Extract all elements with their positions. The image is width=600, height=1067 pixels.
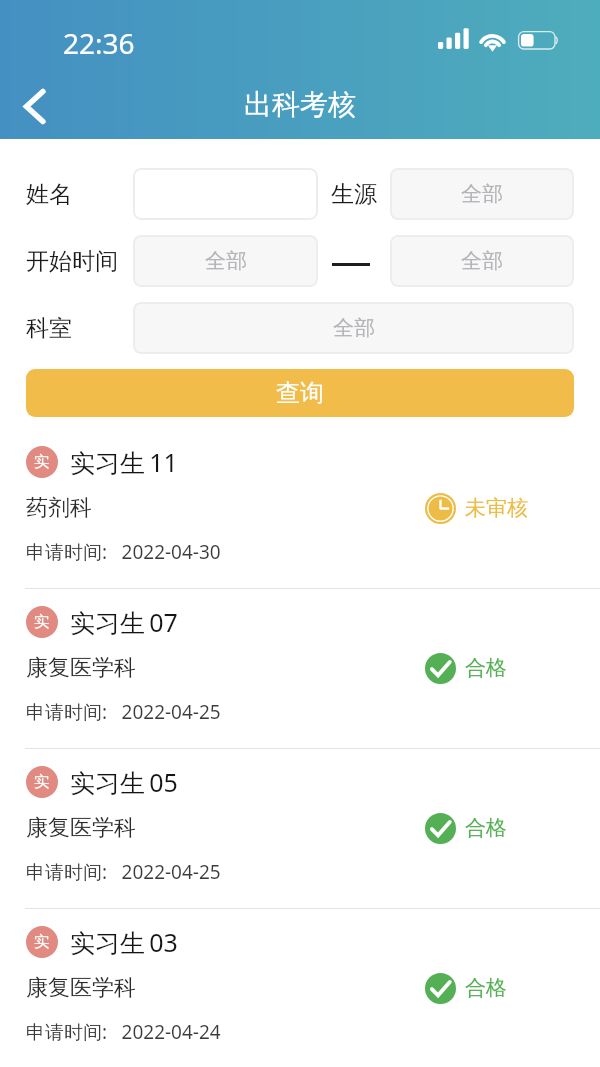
- staticText: 出科考核: [244, 87, 356, 122]
- staticText: 申请时间: 2022-04-24: [26, 1019, 221, 1045]
- staticText: 实: [34, 612, 50, 632]
- button[interactable]: 实: [0, 431, 600, 591]
- button[interactable]: 实: [0, 911, 600, 1067]
- staticText: 实: [34, 932, 50, 952]
- staticText: 开始时间: [26, 247, 118, 276]
- button[interactable]: [133, 168, 318, 220]
- staticText: 申请时间: 2022-04-25: [26, 859, 221, 885]
- staticText: 未审核: [465, 495, 528, 521]
- staticText: 申请时间: 2022-04-25: [26, 699, 221, 725]
- staticText: 申请时间: 2022-04-30: [26, 539, 221, 565]
- staticText: 实: [34, 772, 50, 792]
- staticText: 科室: [26, 314, 72, 343]
- staticText: 实习生 07: [70, 605, 178, 637]
- staticText: 康复医学科: [26, 654, 136, 682]
- button[interactable]: 全部: [390, 168, 574, 220]
- staticText: 康复医学科: [26, 814, 136, 842]
- staticText: 实习生 11: [70, 445, 178, 477]
- staticText: 合格: [465, 815, 507, 841]
- button[interactable]: 全部: [390, 235, 574, 287]
- staticText: 全部: [461, 181, 503, 207]
- staticText: 实习生 03: [70, 925, 178, 957]
- staticText: 全部: [205, 248, 247, 274]
- staticText: 全部: [461, 248, 503, 274]
- staticText: 康复医学科: [26, 974, 136, 1002]
- staticText: 生源: [331, 180, 377, 209]
- staticText: 合格: [465, 655, 507, 681]
- staticText: 合格: [465, 975, 507, 1001]
- staticText: 姓名: [26, 180, 72, 209]
- button[interactable]: 查询: [26, 369, 574, 417]
- button[interactable]: 实: [0, 591, 600, 751]
- button[interactable]: 全部: [133, 302, 574, 354]
- button[interactable]: 实: [0, 751, 600, 911]
- staticText: 药剂科: [26, 494, 92, 522]
- staticText: 22:36: [63, 24, 135, 62]
- button[interactable]: Back: [4, 78, 66, 134]
- staticText: 实习生 05: [70, 765, 178, 797]
- staticText: 查询: [276, 378, 324, 408]
- button[interactable]: 全部: [133, 235, 318, 287]
- staticText: 全部: [333, 315, 375, 341]
- staticText: 实: [34, 452, 50, 472]
